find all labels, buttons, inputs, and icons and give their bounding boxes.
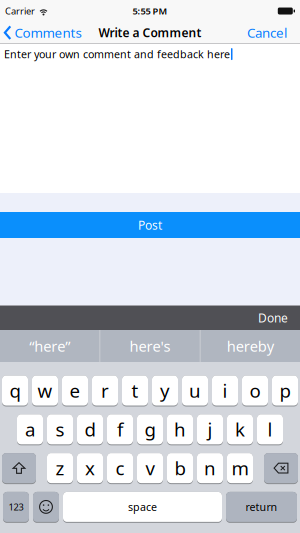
staticText: k — [235, 417, 245, 442]
staticText: 5:55 PM — [132, 5, 167, 17]
button[interactable]: v — [137, 453, 163, 484]
button[interactable]: return — [226, 492, 297, 523]
button[interactable]: p — [272, 375, 298, 406]
button[interactable] — [264, 453, 298, 484]
staticText: Comments — [14, 24, 81, 41]
staticText: n — [204, 456, 216, 480]
staticText: q — [9, 378, 20, 403]
button[interactable]: n — [197, 453, 223, 484]
button[interactable]: g — [137, 414, 163, 445]
button[interactable] — [33, 492, 59, 523]
button[interactable] — [2, 453, 36, 484]
staticText: v — [145, 456, 154, 480]
button[interactable]: Post — [0, 212, 300, 238]
button[interactable]: z — [47, 453, 73, 484]
staticText: t — [131, 378, 138, 403]
button[interactable]: Comments — [0, 24, 81, 41]
staticText: m — [231, 456, 248, 480]
button[interactable]: j — [197, 414, 223, 445]
button[interactable]: s — [47, 414, 73, 445]
staticText: Done — [258, 310, 288, 326]
button[interactable]: a — [17, 414, 43, 445]
staticText: Cancel — [247, 24, 287, 41]
staticText: d — [84, 417, 95, 442]
staticText: Write a Comment — [98, 25, 201, 41]
staticText: space — [128, 500, 157, 514]
button[interactable]: t — [122, 375, 148, 406]
staticText: “here” — [29, 336, 70, 356]
button[interactable]: r — [92, 375, 118, 406]
button[interactable]: Cancel — [247, 24, 300, 41]
button[interactable]: y — [152, 375, 178, 406]
button[interactable]: “here” — [0, 330, 99, 362]
staticText: r — [101, 378, 109, 403]
button[interactable]: Done — [258, 310, 300, 326]
button[interactable]: b — [167, 453, 193, 484]
button[interactable]: hereby — [201, 330, 300, 362]
staticText: c — [115, 456, 124, 480]
staticText: g — [144, 417, 155, 442]
staticText: Enter your own comment and feedback here — [4, 47, 230, 61]
button[interactable]: 123 — [3, 492, 29, 523]
staticText: y — [160, 378, 170, 403]
staticText: l — [267, 417, 272, 442]
staticText: b — [174, 456, 185, 480]
button[interactable]: m — [227, 453, 253, 484]
button[interactable]: o — [242, 375, 268, 406]
staticText: 123 — [8, 501, 23, 513]
staticText: o — [249, 378, 260, 403]
staticText: p — [279, 378, 290, 403]
button[interactable]: w — [32, 375, 58, 406]
staticText: w — [37, 378, 52, 403]
staticText: hereby — [227, 336, 274, 356]
button[interactable]: e — [62, 375, 88, 406]
staticText: return — [245, 500, 277, 514]
staticText: u — [189, 378, 201, 403]
button[interactable]: f — [107, 414, 133, 445]
staticText: here's — [129, 336, 170, 356]
button[interactable]: l — [257, 414, 283, 445]
button[interactable]: here's — [100, 330, 200, 362]
button[interactable]: c — [107, 453, 133, 484]
button[interactable]: q — [2, 375, 28, 406]
button[interactable]: h — [167, 414, 193, 445]
button[interactable]: x — [77, 453, 103, 484]
button[interactable]: d — [77, 414, 103, 445]
button[interactable]: Enter your own comment and feedback here — [0, 44, 300, 193]
button[interactable]: i — [212, 375, 238, 406]
staticText: j — [207, 417, 212, 442]
staticText: z — [55, 456, 64, 480]
staticText: f — [117, 417, 123, 442]
staticText: e — [69, 378, 80, 403]
staticText: h — [174, 417, 186, 442]
staticText: Post — [138, 217, 162, 233]
staticText: Carrier — [5, 5, 35, 17]
staticText: a — [25, 417, 35, 442]
button[interactable]: space — [63, 492, 222, 523]
staticText: x — [85, 456, 95, 480]
button[interactable]: k — [227, 414, 253, 445]
staticText: i — [222, 378, 227, 403]
staticText: s — [55, 417, 64, 442]
button[interactable]: u — [182, 375, 208, 406]
